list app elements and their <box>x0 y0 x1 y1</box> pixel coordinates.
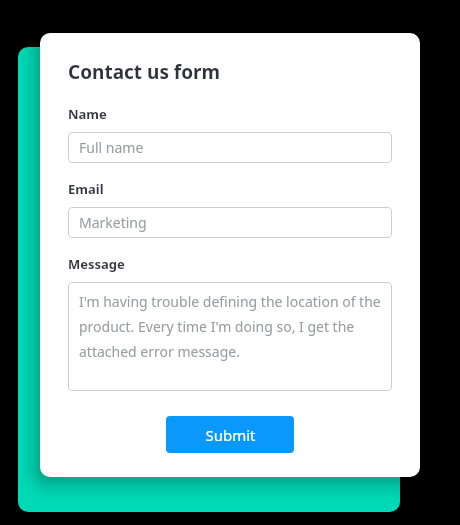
staticText: Contact us form <box>68 59 221 85</box>
staticText: Submit <box>205 425 256 445</box>
staticText: Marketing <box>79 213 147 232</box>
staticText: Email <box>68 180 104 198</box>
button[interactable]: Submit form <box>166 416 294 453</box>
staticText: Full name <box>79 138 144 157</box>
staticText: Name <box>68 105 107 123</box>
staticText: I'm having trouble defining the location… <box>79 292 381 361</box>
staticText: Message <box>68 255 125 273</box>
button[interactable]: I'm having trouble defining the location… <box>68 282 392 391</box>
button[interactable]: Full name <box>68 132 392 163</box>
button[interactable]: Marketing <box>68 207 392 238</box>
